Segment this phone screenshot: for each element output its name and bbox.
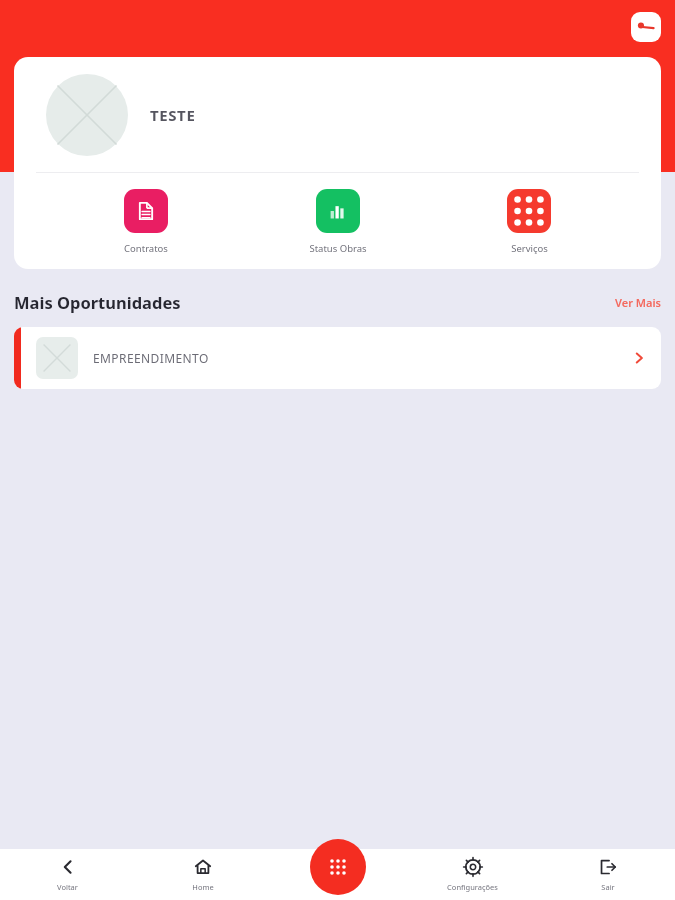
button[interactable]: Configurações <box>405 849 540 900</box>
staticText: Ver Mais <box>615 295 661 310</box>
staticText: Contratos <box>124 242 168 255</box>
staticText: Status Obras <box>309 242 367 255</box>
button[interactable]: Serviços <box>469 189 589 255</box>
button[interactable]: Contratos <box>86 189 206 255</box>
button[interactable]: Voltar <box>0 849 135 900</box>
button[interactable]: Home <box>135 849 270 900</box>
staticText: Home <box>192 882 214 892</box>
staticText: EMPREENDIMENTO <box>93 350 209 366</box>
button[interactable]: Ver Mais <box>615 295 661 310</box>
staticText: Serviços <box>511 242 548 255</box>
button[interactable]: TESTE <box>14 57 661 172</box>
button[interactable]: Status Obras <box>278 189 398 255</box>
button[interactable]: EMPREENDIMENTO <box>14 327 661 389</box>
staticText: TESTE <box>150 105 196 125</box>
staticText: Mais Oportunidades <box>14 291 181 313</box>
button[interactable]: Menu <box>310 839 366 895</box>
staticText: Configurações <box>447 882 498 892</box>
button[interactable]: Sair <box>540 849 675 900</box>
button[interactable]: Logo <box>631 12 661 42</box>
staticText: Voltar <box>57 882 78 892</box>
staticText: Sair <box>601 882 615 892</box>
